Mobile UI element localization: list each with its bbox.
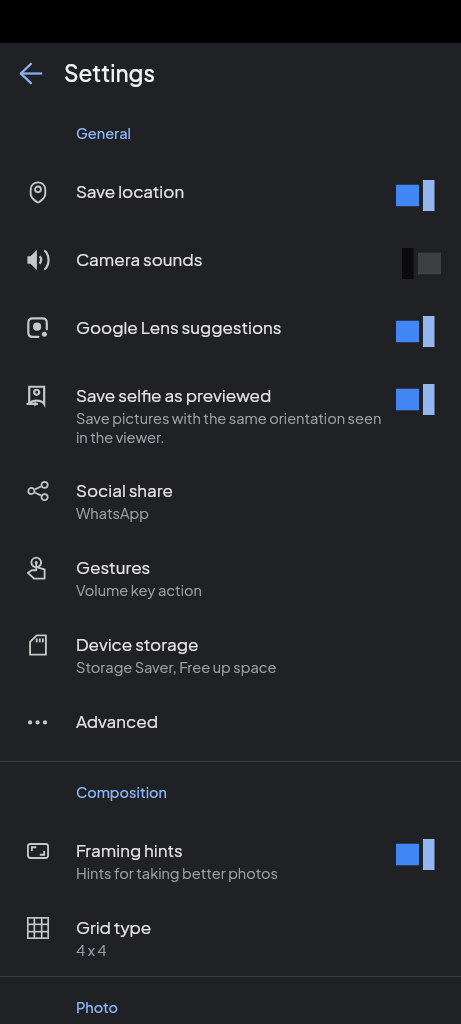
button[interactable]: Switch on <box>391 379 443 413</box>
button[interactable]: Switch on <box>391 175 443 209</box>
staticText: Grid type <box>76 916 152 937</box>
staticText: Social share <box>76 479 174 500</box>
button[interactable]: Switch on <box>391 311 443 345</box>
button[interactable]: Device storage <box>0 616 461 693</box>
staticText: Hints for taking better photos <box>76 864 278 882</box>
staticText: Camera sounds <box>76 248 203 269</box>
staticText: 4 x 4 <box>76 941 107 959</box>
button[interactable]: Grid type <box>0 899 461 976</box>
staticText: WhatsApp <box>76 504 149 522</box>
staticText: Gestures <box>76 556 151 577</box>
staticText: Storage Saver, Free up space <box>76 658 277 676</box>
staticText: Volume key action <box>76 581 202 599</box>
staticText: Photo <box>76 998 119 1016</box>
staticText: Device storage <box>76 633 199 654</box>
button[interactable]: Gestures <box>0 539 461 616</box>
staticText: General <box>76 124 131 142</box>
button[interactable]: Advanced <box>0 693 461 761</box>
staticText: Save location <box>76 180 185 201</box>
staticText: Composition <box>76 783 167 801</box>
staticText: Save selfie as previewed <box>76 384 272 405</box>
button[interactable]: Google Lens suggestions <box>0 299 461 367</box>
button[interactable]: Back <box>8 51 52 95</box>
button[interactable]: Social share <box>0 462 461 539</box>
button[interactable]: Save selfie as previewed <box>0 367 461 462</box>
staticText: Advanced <box>76 710 158 731</box>
staticText: Save pictures with the same orientation … <box>76 409 382 427</box>
button[interactable]: Framing hints <box>0 822 461 899</box>
button[interactable]: Switch off <box>391 243 443 277</box>
staticText: Framing hints <box>76 839 183 860</box>
button[interactable]: Camera sounds <box>0 231 461 299</box>
staticText: Google Lens suggestions <box>76 316 282 337</box>
staticText: in the viewer. <box>76 428 165 446</box>
button[interactable]: Switch on <box>391 834 443 868</box>
staticText: Settings <box>64 59 155 87</box>
button[interactable]: Save location <box>0 163 461 231</box>
